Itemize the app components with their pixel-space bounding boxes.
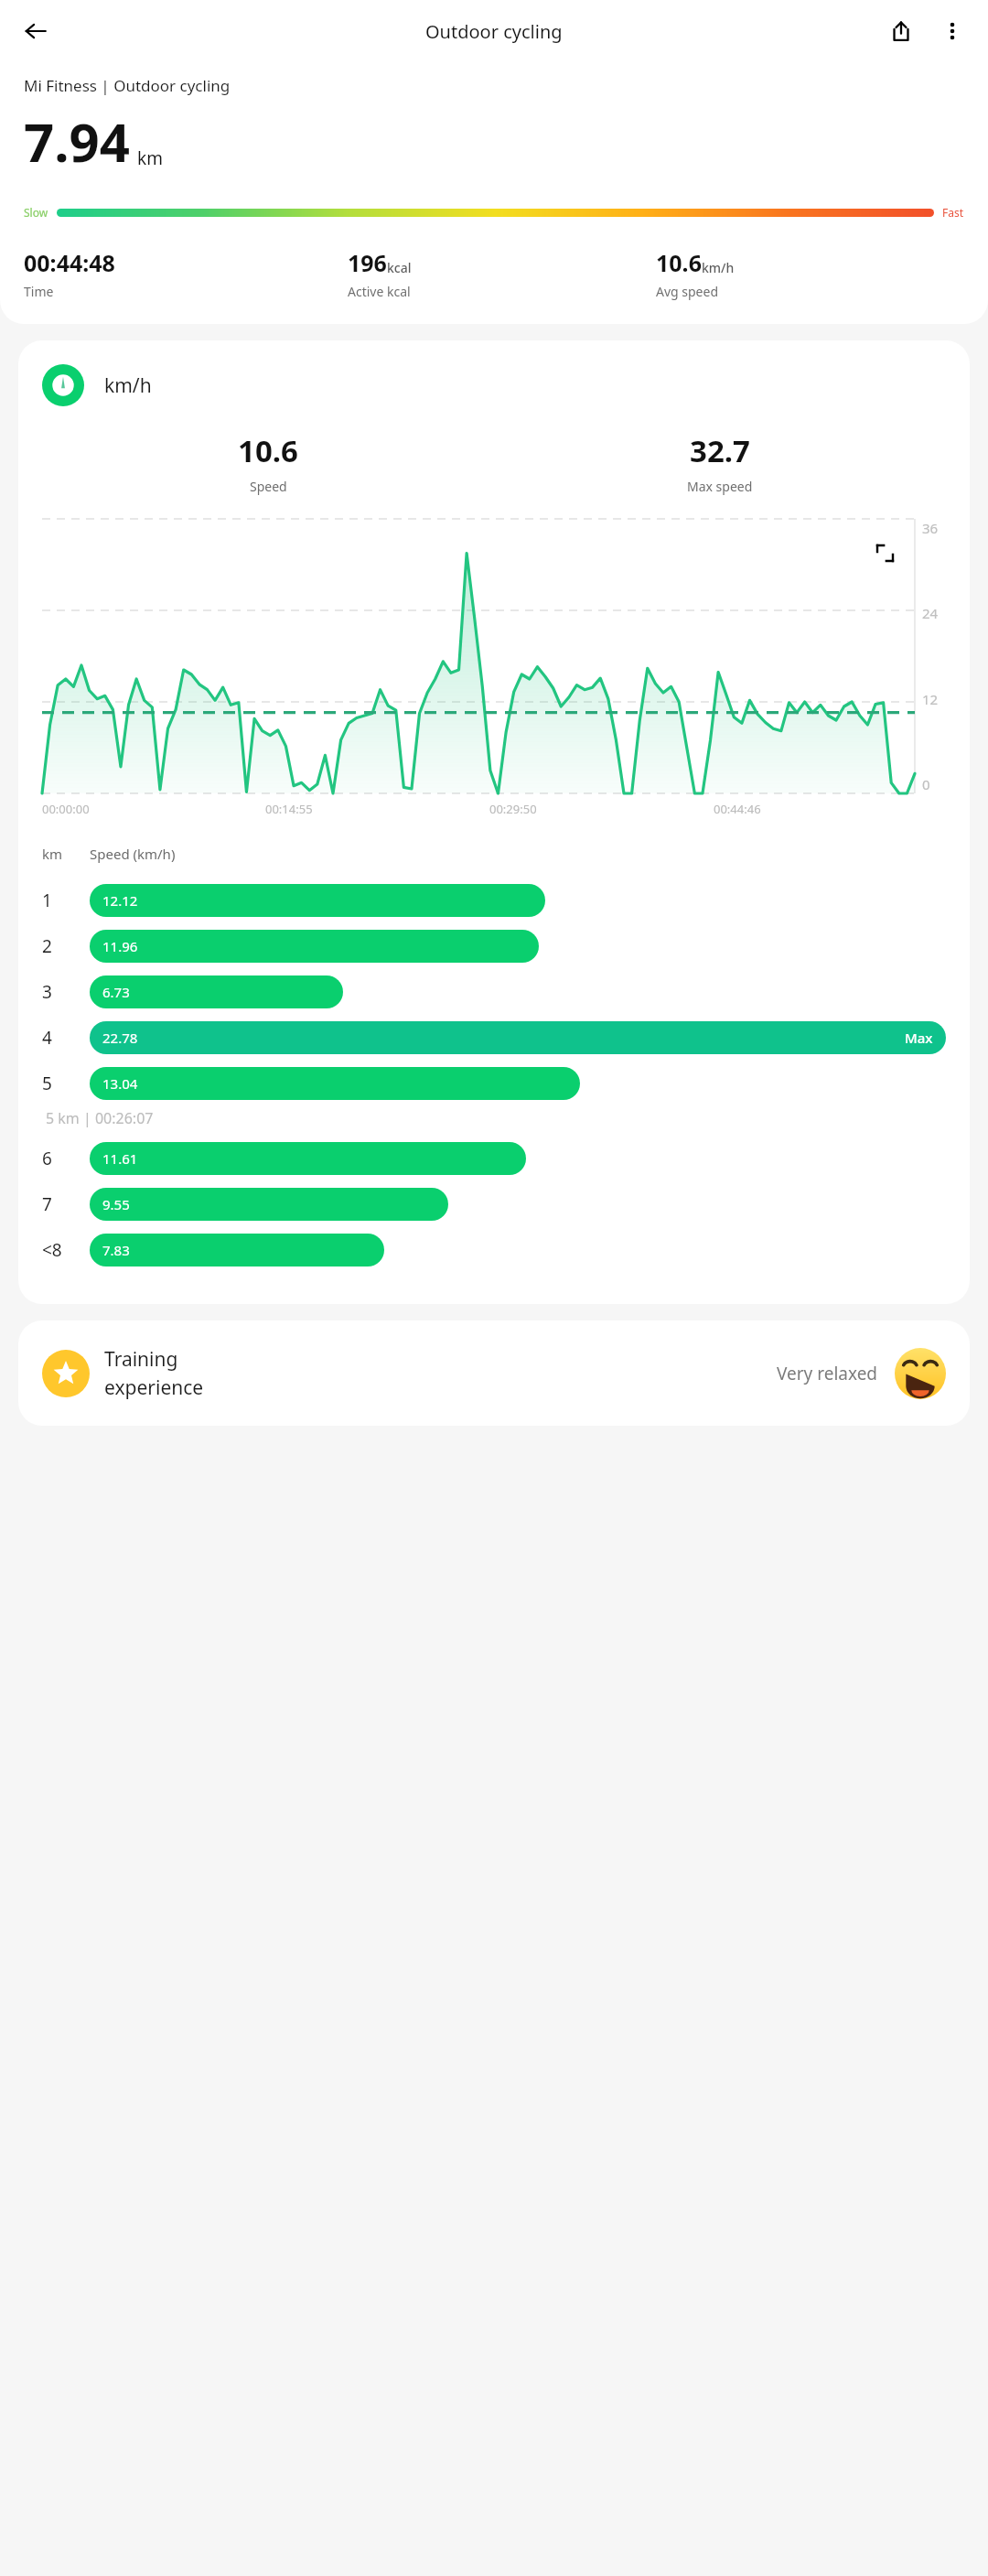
staticText: 10.6 xyxy=(656,247,702,278)
staticText: 12 xyxy=(922,690,939,708)
staticText: km xyxy=(137,146,163,170)
staticText: 32.7 xyxy=(690,430,750,471)
staticText: 9.55 xyxy=(102,1195,130,1213)
button[interactable]: 7 xyxy=(42,1181,946,1227)
staticText: Active kcal xyxy=(348,283,411,300)
staticText: Outdoor cycling xyxy=(425,19,563,44)
staticText: 36 xyxy=(922,519,939,537)
staticText: 00:29:50 xyxy=(489,801,714,817)
staticText: 7.83 xyxy=(102,1241,130,1259)
staticText: 10.6 xyxy=(238,430,298,471)
staticText: 5 km | 00:26:07 xyxy=(46,1108,154,1128)
staticText: 1 xyxy=(42,889,52,912)
staticText: 2 xyxy=(42,934,52,958)
staticText: 0 xyxy=(922,775,930,793)
button[interactable]: Back xyxy=(13,8,59,54)
staticText: Max speed xyxy=(687,478,753,495)
staticText: Mi Fitness | Outdoor cycling xyxy=(24,75,231,96)
staticText: 6.73 xyxy=(102,983,130,1001)
button[interactable]: 1 xyxy=(42,878,946,923)
staticText: Very relaxed xyxy=(777,1362,878,1385)
staticText: kcal xyxy=(387,259,412,276)
staticText: 11.61 xyxy=(102,1149,138,1168)
staticText: km xyxy=(42,845,90,863)
button[interactable]: 2 xyxy=(42,923,946,969)
button[interactable]: 5 xyxy=(42,1061,946,1106)
staticText: Max xyxy=(905,1029,933,1047)
staticText: 24 xyxy=(922,604,939,622)
staticText: <8 xyxy=(42,1238,62,1262)
staticText: 196 xyxy=(348,247,387,278)
button[interactable]: Share xyxy=(878,8,924,54)
staticText: Speed xyxy=(250,478,287,495)
staticText: 00:00:00 xyxy=(42,801,265,817)
staticText: 00:44:46 xyxy=(714,801,915,817)
staticText: 7.94 xyxy=(24,105,130,178)
staticText: Training experience xyxy=(104,1346,204,1400)
staticText: 11.96 xyxy=(102,937,138,955)
button[interactable]: 3 xyxy=(42,969,946,1015)
staticText: km/h xyxy=(702,259,735,276)
staticText: 12.12 xyxy=(102,891,138,910)
button[interactable]: <8 xyxy=(42,1227,946,1273)
staticText: Fast xyxy=(942,205,964,220)
staticText: 6 xyxy=(42,1147,52,1170)
button[interactable]: More options xyxy=(929,8,975,54)
staticText: Avg speed xyxy=(656,283,719,300)
staticText: 4 xyxy=(42,1026,52,1050)
staticText: Speed (km/h) xyxy=(90,845,176,863)
staticText: 7 xyxy=(42,1192,52,1216)
staticText: Time xyxy=(24,283,54,300)
staticText: 00:14:55 xyxy=(265,801,489,817)
staticText: 13.04 xyxy=(102,1074,138,1093)
button[interactable]: 4 xyxy=(42,1015,946,1061)
button[interactable]: 6 xyxy=(42,1136,946,1181)
staticText: 5 xyxy=(42,1072,52,1095)
staticText: 3 xyxy=(42,980,52,1004)
button[interactable]: Training experience xyxy=(18,1320,970,1426)
staticText: 00:44:48 xyxy=(24,247,115,278)
staticText: Slow xyxy=(24,205,48,220)
staticText: km/h xyxy=(104,372,152,399)
staticText: 22.78 xyxy=(102,1029,138,1047)
button[interactable]: Expand chart xyxy=(865,534,904,572)
